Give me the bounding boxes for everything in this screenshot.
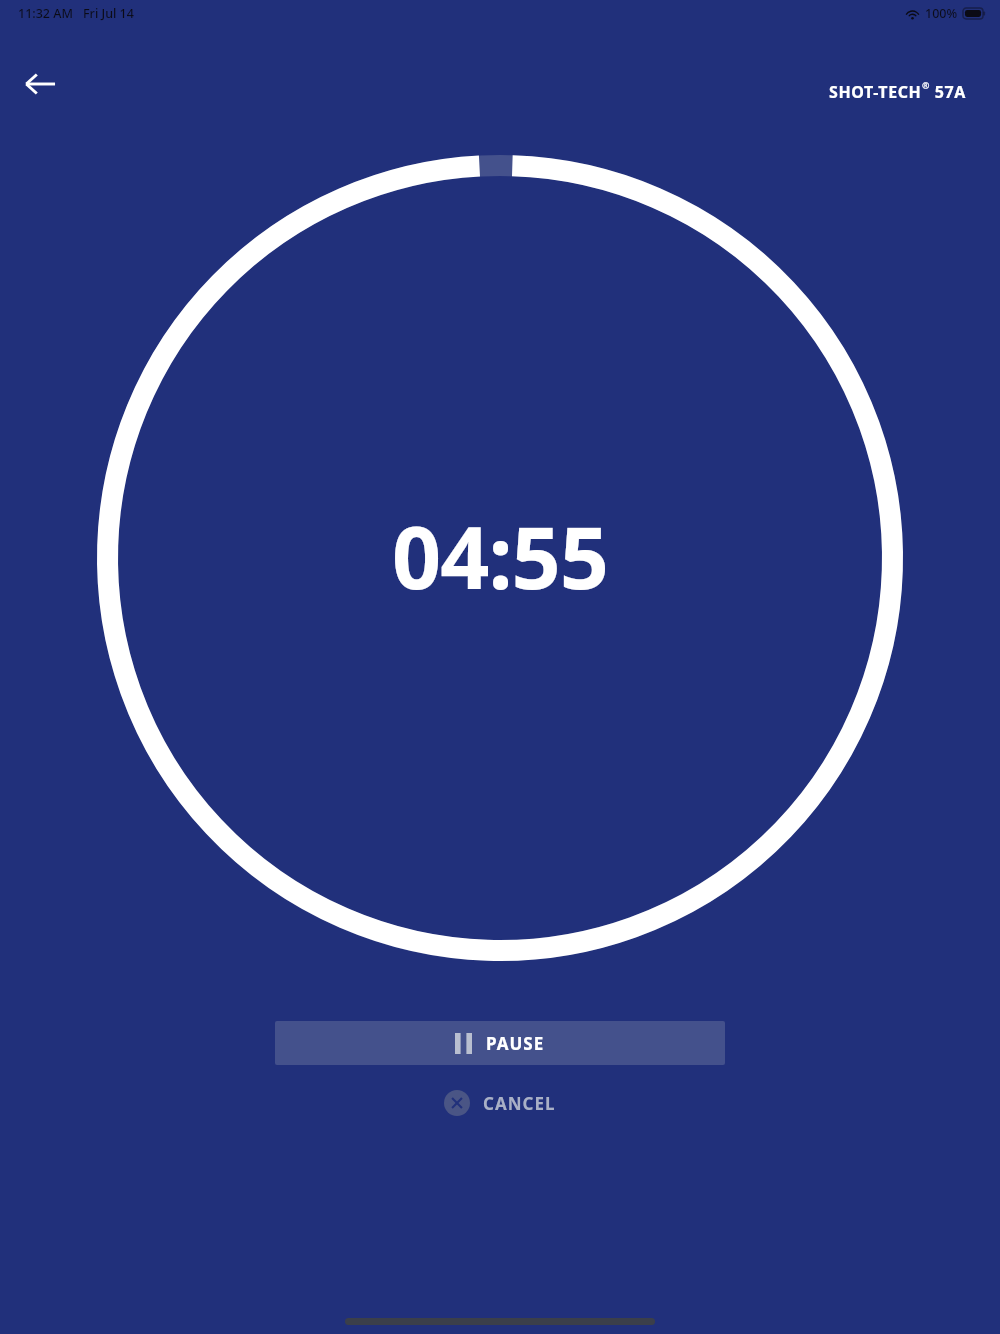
staticText: 04:55 bbox=[392, 497, 608, 614]
staticText: 57A bbox=[930, 81, 966, 103]
staticText: ® bbox=[922, 79, 930, 91]
button[interactable]: PAUSE bbox=[275, 1021, 725, 1065]
staticText: CANCEL bbox=[483, 1092, 556, 1115]
staticText: 11:32 AM bbox=[18, 5, 73, 22]
button[interactable]: Back bbox=[14, 58, 66, 110]
button[interactable]: CANCEL bbox=[434, 1084, 566, 1122]
staticText: PAUSE bbox=[486, 1032, 545, 1055]
staticText: SHOT-TECH bbox=[829, 81, 922, 103]
staticText: 100% bbox=[925, 5, 958, 22]
staticText: Fri Jul 14 bbox=[83, 5, 134, 22]
